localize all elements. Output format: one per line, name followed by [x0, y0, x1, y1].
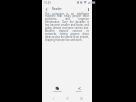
button[interactable]: Back — [51, 96, 56, 101]
staticText: Translate — [53, 90, 62, 93]
button[interactable]: More options — [85, 6, 91, 12]
button[interactable]: Recents — [79, 96, 84, 101]
staticText: Reader — [52, 7, 62, 11]
button[interactable]: Translate — [52, 86, 63, 94]
staticText: The computer is an intelligent machine t… — [45, 12, 89, 42]
button[interactable]: Share — [75, 86, 83, 94]
staticText: Share — [76, 90, 82, 93]
button[interactable]: Home — [65, 96, 70, 101]
button[interactable]: Back — [43, 6, 49, 12]
staticText: 10:49 — [44, 1, 51, 5]
